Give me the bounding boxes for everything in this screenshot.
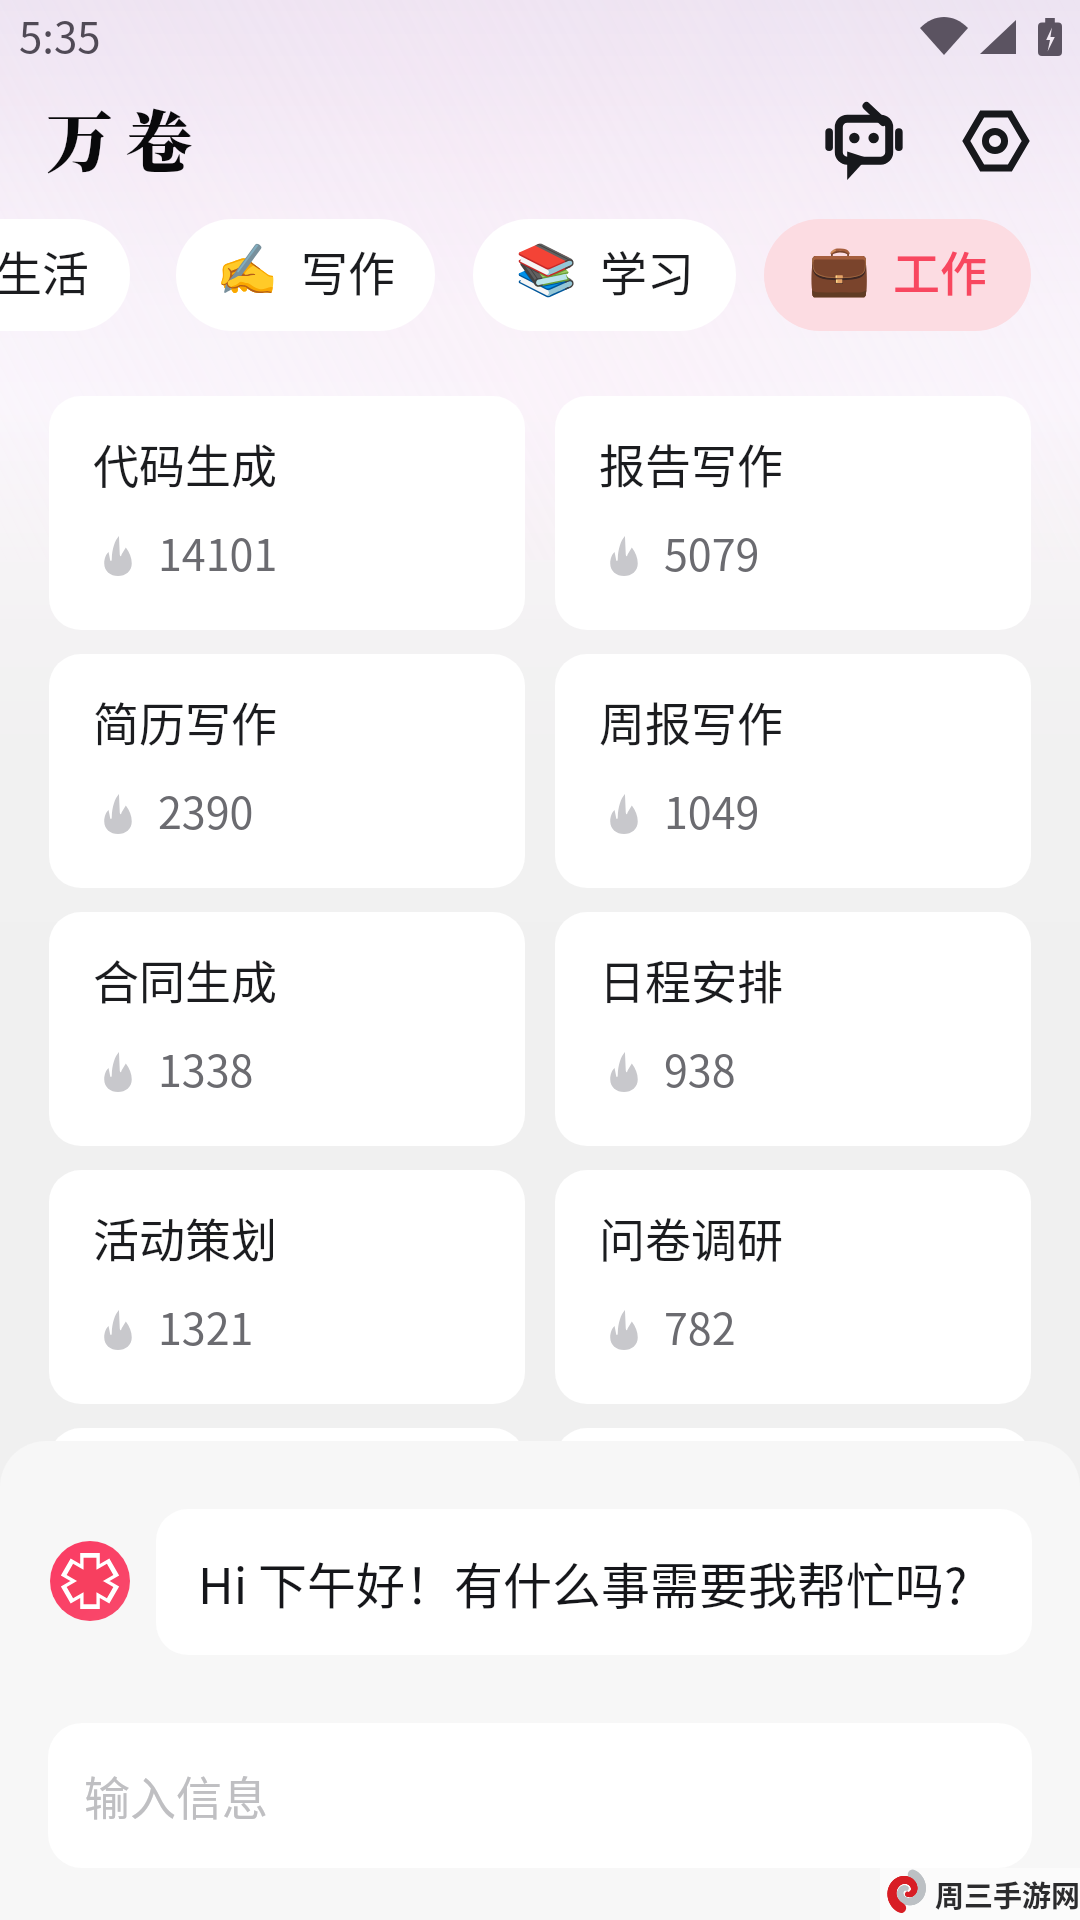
button[interactable]: 📚 <box>473 219 736 331</box>
staticText: 782 <box>664 1295 736 1357</box>
button[interactable]: 输入信息 <box>48 1723 1032 1868</box>
staticText: 周报写作 <box>599 688 783 755</box>
staticText: 5:35 <box>19 4 101 65</box>
staticText: 代码生成 <box>93 430 277 497</box>
staticText: 日程安排 <box>599 946 783 1013</box>
staticText: 写作 <box>301 236 395 304</box>
button[interactable]: 💼 <box>764 219 1031 331</box>
staticText: 周三手游网 <box>935 1873 1080 1915</box>
staticText: 640 <box>158 1553 230 1615</box>
staticText: 💼 <box>808 241 871 300</box>
button[interactable]: 日程安排 <box>555 912 1031 1146</box>
button[interactable]: 🌱 <box>0 219 130 331</box>
staticText: 活动策划 <box>93 1204 277 1271</box>
button[interactable]: AI assistant <box>809 88 919 198</box>
button[interactable]: Hi 下午好！有什么事需要我帮忙吗? <box>156 1509 1032 1655</box>
staticText: 万 卷 <box>46 90 191 186</box>
staticText: 生活 <box>0 236 89 304</box>
staticText: 14101 <box>158 521 278 583</box>
button[interactable]: 代码生成 <box>49 396 525 630</box>
staticText: 工作 <box>893 236 987 304</box>
button[interactable]: 问卷调研 <box>555 1170 1031 1404</box>
staticText: ✍️ <box>216 241 279 300</box>
button[interactable]: 周报写作 <box>555 654 1031 888</box>
staticText: 📚 <box>515 241 578 300</box>
staticText: 简历写作 <box>93 688 277 755</box>
staticText: 学习 <box>600 236 694 304</box>
staticText: 输入信息 <box>84 1762 268 1829</box>
staticText: 邮件撰写 <box>599 1462 783 1529</box>
button[interactable]: ✍️ <box>176 219 435 331</box>
staticText: 合同生成 <box>93 946 277 1013</box>
staticText: 问卷调研 <box>599 1204 783 1271</box>
staticText: 会议纪要 <box>93 1462 277 1529</box>
button[interactable]: 报告写作 <box>555 396 1031 630</box>
button[interactable]: 会议纪要 <box>49 1428 525 1662</box>
staticText: 5079 <box>664 521 760 583</box>
button[interactable]: 合同生成 <box>49 912 525 1146</box>
button[interactable]: 邮件撰写 <box>555 1428 1031 1662</box>
button[interactable]: Settings <box>941 86 1051 196</box>
staticText: Hi 下午好！有什么事需要我帮忙吗? <box>198 1547 968 1618</box>
staticText: 938 <box>664 1037 736 1099</box>
staticText: 512 <box>664 1553 736 1615</box>
button[interactable]: 简历写作 <box>49 654 525 888</box>
staticText: 1321 <box>158 1295 254 1357</box>
staticText: 2390 <box>158 779 254 841</box>
button[interactable]: 活动策划 <box>49 1170 525 1404</box>
staticText: 1338 <box>158 1037 254 1099</box>
staticText: 1049 <box>664 779 760 841</box>
staticText: 报告写作 <box>599 430 783 497</box>
